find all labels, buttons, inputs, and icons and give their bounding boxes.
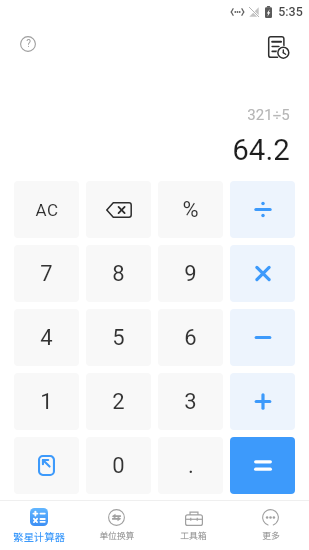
staticText: 7	[40, 261, 53, 287]
button[interactable]: 工具箱	[155, 501, 232, 550]
staticText: 5	[112, 325, 125, 351]
button[interactable]: Expand	[14, 437, 79, 494]
button[interactable]: 更多	[232, 501, 309, 550]
button[interactable]: 1	[14, 373, 79, 430]
button[interactable]: Equals	[230, 437, 295, 494]
button[interactable]: Divide	[230, 181, 295, 238]
button[interactable]: 7	[14, 245, 79, 302]
button[interactable]: 0	[86, 437, 151, 494]
staticText: 繁星计算器	[13, 529, 65, 544]
staticText: 9	[184, 261, 197, 287]
button[interactable]: %	[158, 181, 223, 238]
staticText: %	[182, 197, 199, 223]
staticText: 4	[40, 325, 53, 351]
staticText: 8	[112, 261, 125, 287]
button[interactable]: History	[266, 35, 290, 59]
staticText: 6	[184, 325, 197, 351]
staticText: 64.2	[232, 133, 290, 168]
staticText: ?	[26, 38, 31, 50]
staticText: 321÷5	[247, 106, 290, 124]
staticText: 0	[112, 453, 125, 479]
button[interactable]: Plus	[230, 373, 295, 430]
staticText: AC	[35, 200, 59, 220]
button[interactable]: 2	[86, 373, 151, 430]
button[interactable]: 8	[86, 245, 151, 302]
button[interactable]: Delete	[86, 181, 151, 238]
button[interactable]: Help	[14, 30, 42, 58]
button[interactable]: .	[158, 437, 223, 494]
button[interactable]: 9	[158, 245, 223, 302]
button[interactable]: Multiply	[230, 245, 295, 302]
button[interactable]: 6	[158, 309, 223, 366]
staticText: 2	[112, 389, 125, 415]
staticText: 3	[184, 389, 197, 415]
staticText: .	[188, 453, 194, 479]
staticText: 工具箱	[180, 529, 207, 542]
staticText: 1	[40, 389, 53, 415]
staticText: 单位换算	[99, 529, 135, 542]
button[interactable]: Minus	[230, 309, 295, 366]
button[interactable]: 4	[14, 309, 79, 366]
button[interactable]: 繁星计算器	[0, 501, 78, 550]
button[interactable]: 3	[158, 373, 223, 430]
staticText: 5:35	[278, 4, 303, 19]
staticText: 更多	[262, 529, 280, 542]
button[interactable]: AC	[14, 181, 79, 238]
button[interactable]: 单位换算	[78, 501, 155, 550]
button[interactable]: 5	[86, 309, 151, 366]
